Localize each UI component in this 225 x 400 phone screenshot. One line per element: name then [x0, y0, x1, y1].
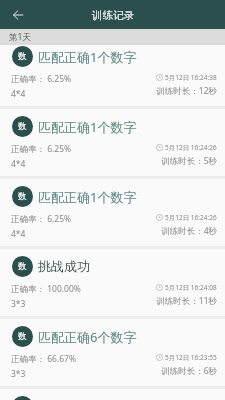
staticText: 5月12日 16:24:26 — [165, 213, 217, 222]
staticText: 5月12日 16:24:08 — [165, 283, 217, 292]
staticText: 4*4 — [11, 158, 26, 170]
staticText: 正确率： 6.25% — [11, 213, 72, 225]
staticText: 4*4 — [11, 228, 26, 240]
button[interactable]: 数 — [0, 319, 225, 386]
staticText: 正确率： 6.25% — [11, 143, 72, 155]
staticText: 训练时长：4秒 — [161, 225, 217, 237]
staticText: 匹配正确1个数字 — [38, 48, 137, 66]
staticText: 正确率： 6.25% — [11, 73, 72, 85]
staticText: 匹配正确1个数字 — [38, 188, 137, 206]
button[interactable]: 数 — [0, 249, 225, 316]
staticText: 训练时长：11秒 — [156, 295, 217, 307]
staticText: 5月12日 16:24:26 — [165, 143, 217, 152]
staticText: 匹配正确6个数字 — [38, 328, 137, 346]
staticText: 5月12日 16:24:38 — [165, 73, 217, 82]
staticText: 4*4 — [11, 88, 26, 100]
staticText: 数 — [18, 191, 27, 202]
staticText: 3*3 — [11, 368, 26, 380]
staticText: 训练时长：6秒 — [161, 365, 217, 377]
staticText: 数 — [18, 261, 27, 272]
staticText: 数 — [18, 331, 27, 342]
staticText: 数 — [18, 51, 27, 62]
button[interactable]: 数 — [0, 39, 225, 106]
button[interactable]: Back — [3, 0, 32, 29]
staticText: 训练记录 — [92, 9, 134, 22]
staticText: 训练时长：12秒 — [156, 85, 217, 97]
staticText: 挑战成功 — [38, 258, 90, 274]
staticText: 5月12日 16:23:55 — [165, 353, 217, 362]
staticText: 匹配正确1个数字 — [38, 118, 137, 136]
staticText: 训练时长：5秒 — [161, 155, 217, 167]
staticText: 正确率： 66.67% — [11, 353, 76, 365]
staticText: 数 — [18, 121, 27, 132]
staticText: 3*3 — [11, 298, 26, 310]
button[interactable]: 数 — [0, 109, 225, 176]
button[interactable]: 数 — [0, 389, 225, 400]
staticText: 第1天 — [9, 31, 31, 43]
button[interactable]: 数 — [0, 179, 225, 246]
staticText: 正确率： 100.00% — [11, 283, 81, 295]
